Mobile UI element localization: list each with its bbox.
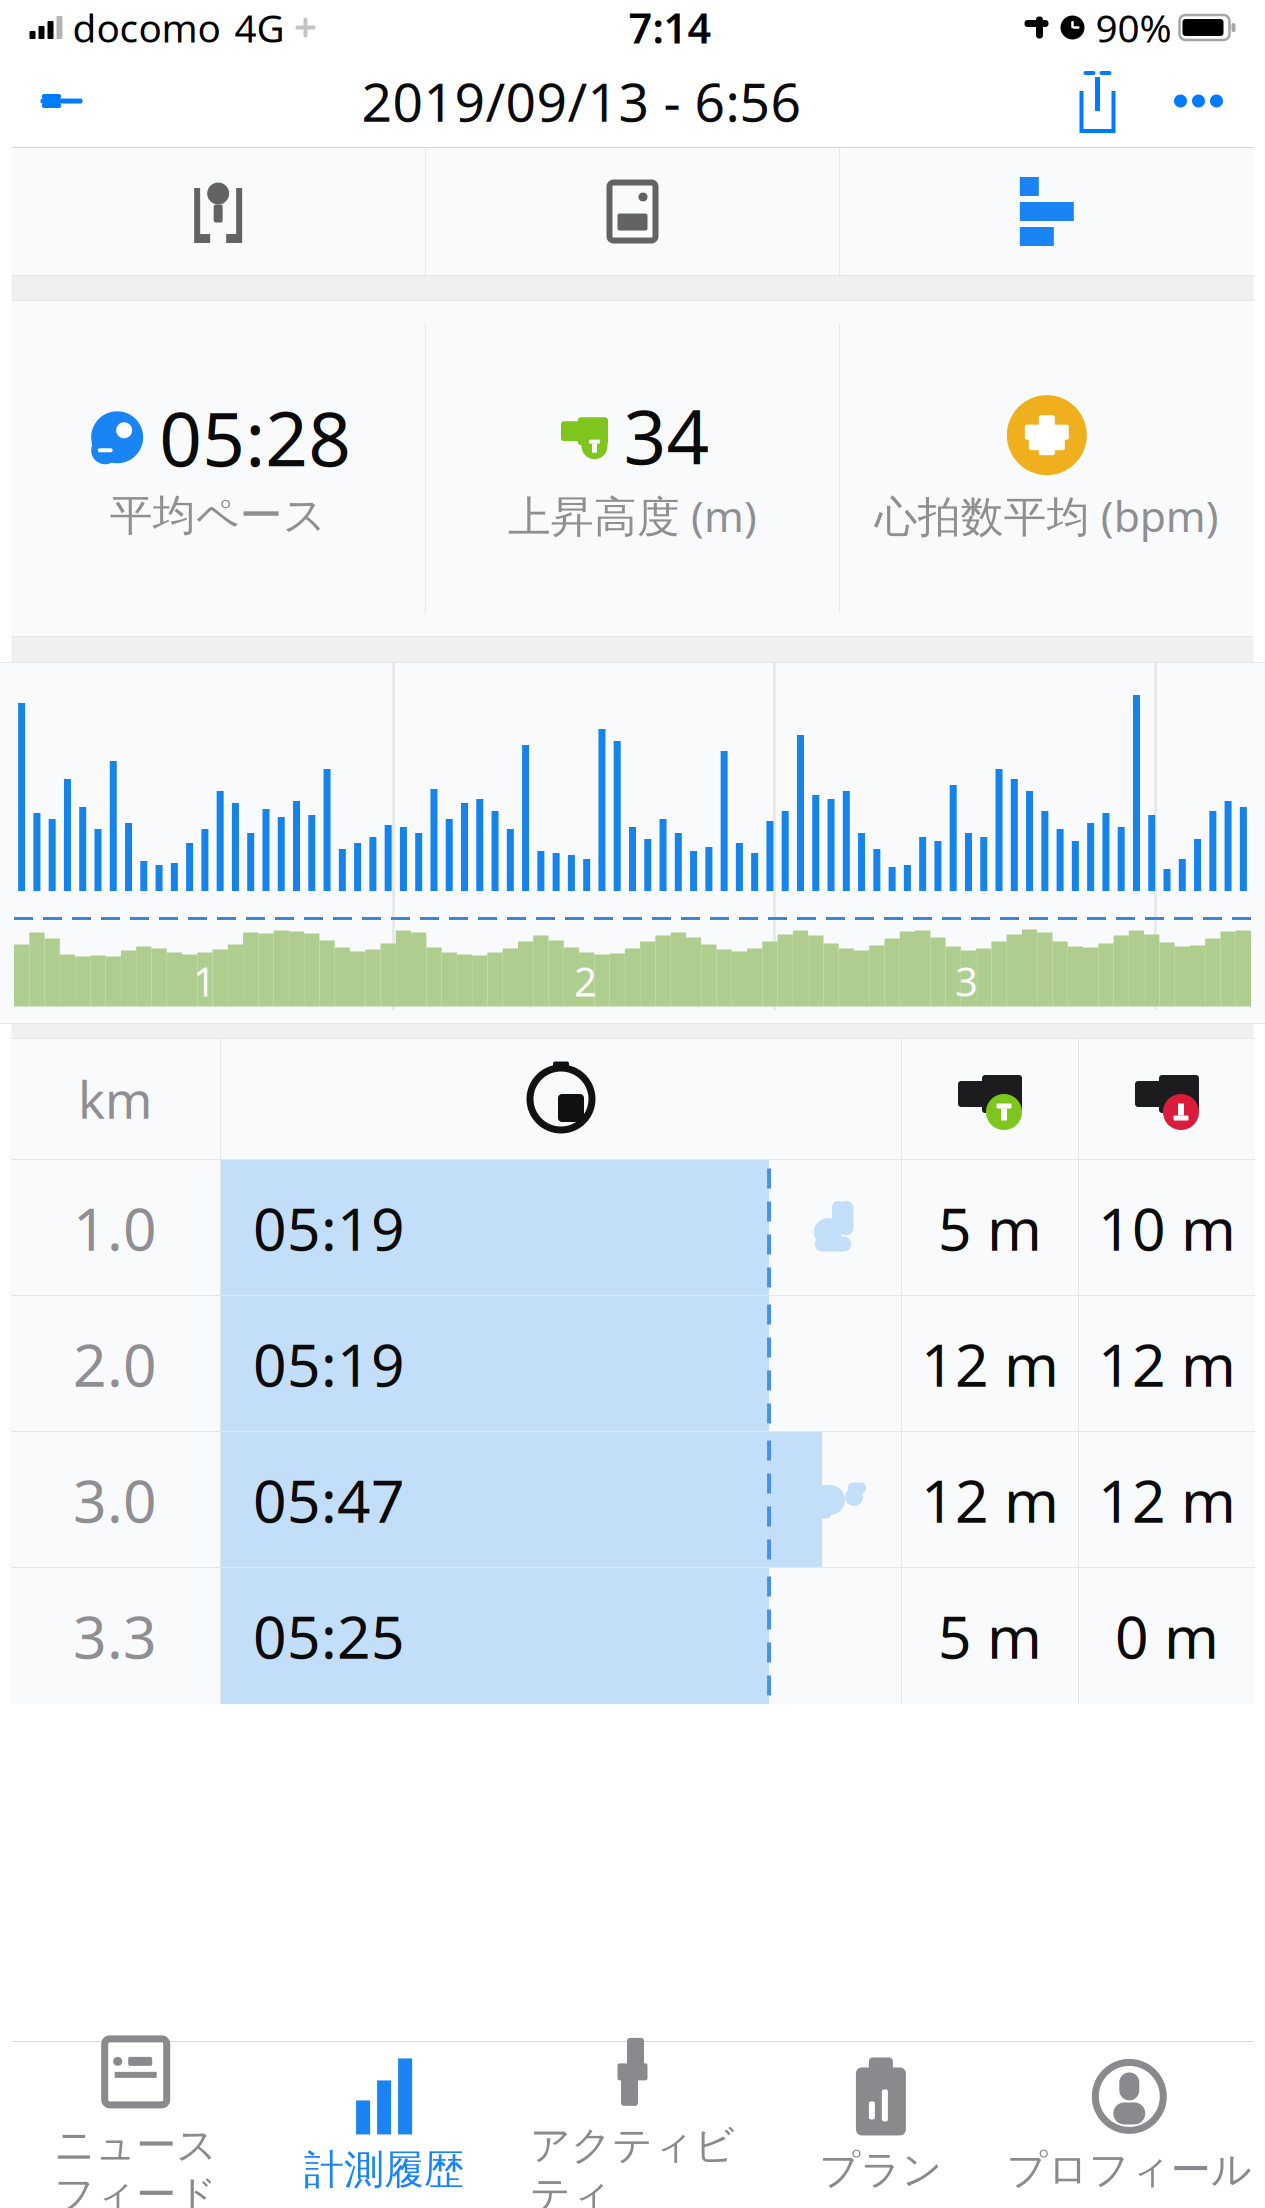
button[interactable]: 2.0: [10, 1296, 1255, 1432]
staticText: 2: [574, 954, 597, 1007]
button[interactable]: Photos: [426, 147, 839, 276]
staticText: 12 m: [921, 1325, 1059, 1403]
button[interactable]: Share: [1051, 57, 1143, 145]
staticText: 平均ペース: [110, 489, 327, 542]
staticText: 2.0: [73, 1325, 157, 1403]
staticText: 3.3: [73, 1597, 157, 1675]
staticText: 1: [193, 954, 216, 1007]
staticText: 05:19: [253, 1189, 405, 1267]
staticText: 12 m: [1098, 1461, 1236, 1539]
staticText: 05:28: [159, 388, 351, 487]
button[interactable]: 3.0: [10, 1432, 1255, 1568]
button[interactable]: プラン: [757, 2042, 1005, 2208]
staticText: 90%: [1095, 2, 1171, 53]
staticText: 心拍数平均 (bpm): [875, 487, 1219, 544]
button[interactable]: 3.3: [10, 1568, 1255, 1704]
staticText: プロフィール: [1007, 2145, 1252, 2194]
button[interactable]: More options: [1143, 57, 1253, 145]
button[interactable]: Back: [11, 57, 111, 145]
staticText: 1.0: [73, 1189, 157, 1267]
staticText: 5 m: [938, 1189, 1042, 1267]
staticText: docomo: [72, 2, 220, 53]
staticText: 2019/09/13 - 6:56: [361, 66, 801, 136]
staticText: 10 m: [1098, 1189, 1236, 1267]
staticText: km: [78, 1065, 152, 1133]
button[interactable]: ニュースフィード: [11, 2042, 260, 2208]
staticText: 3: [955, 954, 978, 1007]
staticText: 12 m: [921, 1461, 1059, 1539]
button[interactable]: Map: [11, 147, 425, 276]
staticText: 5 m: [938, 1597, 1042, 1675]
staticText: 12 m: [1098, 1325, 1236, 1403]
staticText: 34: [623, 386, 709, 485]
staticText: 4G: [234, 2, 284, 53]
staticText: 05:25: [253, 1597, 405, 1675]
button[interactable]: Splits: [840, 147, 1253, 276]
staticText: 3.0: [73, 1461, 157, 1539]
button[interactable]: アクティビティ: [508, 2042, 757, 2208]
staticText: 05:19: [253, 1325, 405, 1403]
staticText: アクティビティ: [530, 2121, 735, 2208]
button[interactable]: 1.0: [10, 1160, 1255, 1296]
button[interactable]: プロフィール: [1005, 2042, 1253, 2208]
staticText: 上昇高度 (m): [508, 487, 757, 544]
staticText: 05:47: [253, 1461, 405, 1539]
staticText: ニュースフィード: [54, 2121, 217, 2208]
button[interactable]: 計測履歴: [260, 2042, 508, 2208]
staticText: プラン: [819, 2145, 942, 2194]
staticText: 計測履歴: [304, 2145, 464, 2194]
staticText: 7:14: [628, 0, 711, 55]
staticText: 0 m: [1115, 1597, 1219, 1675]
